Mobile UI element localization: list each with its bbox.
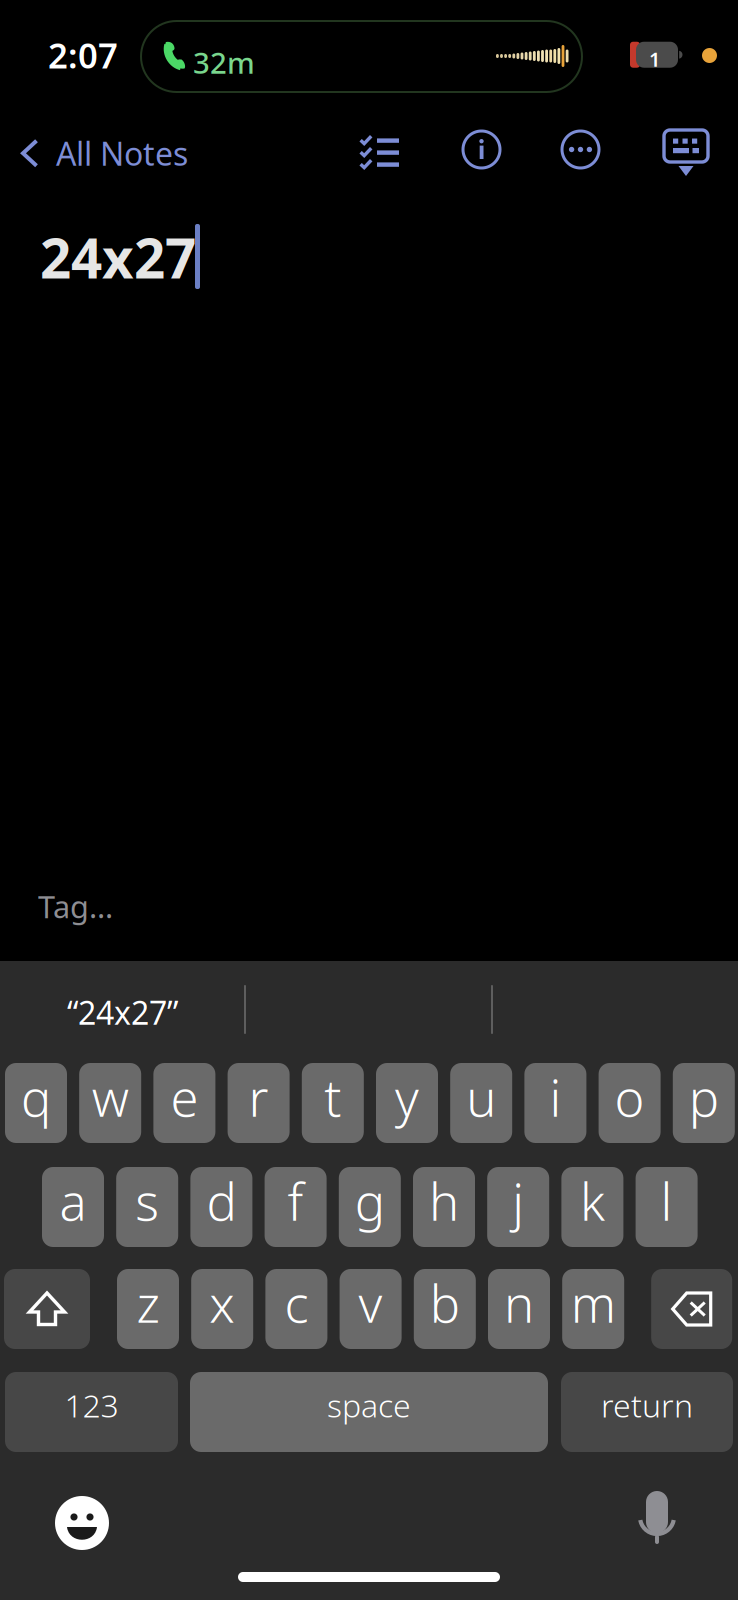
staticText: b: [430, 1269, 460, 1337]
staticText: y: [395, 1063, 419, 1131]
staticText: t: [324, 1063, 341, 1131]
button[interactable]: Emoji: [33, 1474, 131, 1572]
button[interactable]: All Notes: [4, 118, 204, 188]
button[interactable]: Info: [451, 119, 512, 180]
button[interactable]: e: [153, 1063, 215, 1143]
staticText: v: [359, 1269, 383, 1337]
button[interactable]: c: [265, 1269, 327, 1349]
button[interactable]: w: [79, 1063, 141, 1143]
button[interactable]: u: [450, 1063, 512, 1143]
staticText: x: [209, 1269, 235, 1337]
button[interactable]: i: [524, 1063, 586, 1143]
button[interactable]: return: [561, 1372, 733, 1452]
button[interactable]: t: [302, 1063, 364, 1143]
staticText: i: [549, 1063, 561, 1131]
staticText: 1: [649, 46, 660, 72]
button[interactable]: a: [42, 1167, 104, 1247]
staticText: 123: [64, 1384, 118, 1426]
staticText: e: [170, 1063, 198, 1131]
staticText: s: [135, 1167, 159, 1235]
button[interactable]: Tag...: [38, 886, 113, 927]
button[interactable]: y: [376, 1063, 438, 1143]
staticText: w: [92, 1063, 129, 1131]
button[interactable]: z: [117, 1269, 179, 1349]
staticText: 32m: [193, 43, 255, 82]
staticText: n: [504, 1269, 534, 1337]
staticText: d: [206, 1167, 236, 1235]
staticText: return: [601, 1384, 693, 1426]
button[interactable]: o: [599, 1063, 661, 1143]
button[interactable]: d: [190, 1167, 252, 1247]
staticText: j: [512, 1167, 524, 1235]
button[interactable]: x: [191, 1269, 253, 1349]
staticText: 2:07: [48, 32, 118, 78]
staticText: l: [661, 1167, 673, 1235]
staticText: z: [136, 1269, 159, 1337]
staticText: h: [429, 1167, 459, 1235]
button[interactable]: n: [488, 1269, 550, 1349]
button[interactable]: m: [562, 1269, 624, 1349]
button[interactable]: v: [340, 1269, 402, 1349]
staticText: “24x27”: [67, 991, 178, 1033]
staticText: c: [284, 1269, 308, 1337]
button[interactable]: 123: [5, 1372, 178, 1452]
staticText: a: [59, 1167, 86, 1235]
staticText: f: [288, 1167, 304, 1235]
button[interactable]: Delete: [651, 1269, 732, 1349]
staticText: q: [21, 1063, 51, 1131]
button[interactable]: g: [339, 1167, 401, 1247]
button[interactable]: Dictation: [612, 1468, 702, 1566]
staticText: m: [571, 1269, 616, 1337]
button[interactable]: h: [413, 1167, 475, 1247]
button[interactable]: k: [561, 1167, 623, 1247]
button[interactable]: b: [414, 1269, 476, 1349]
staticText: g: [355, 1167, 385, 1235]
staticText: r: [249, 1063, 269, 1131]
button[interactable]: s: [116, 1167, 178, 1247]
staticText: o: [615, 1063, 645, 1131]
button[interactable]: space: [190, 1372, 548, 1452]
button[interactable]: r: [228, 1063, 290, 1143]
button[interactable]: j: [487, 1167, 549, 1247]
staticText: 24x27: [40, 221, 196, 294]
staticText: Tag...: [38, 886, 113, 927]
button[interactable]: More: [550, 119, 611, 180]
staticText: u: [466, 1063, 496, 1131]
button[interactable]: p: [673, 1063, 735, 1143]
staticText: space: [327, 1384, 411, 1426]
button[interactable]: q: [5, 1063, 67, 1143]
button[interactable]: Hide Keyboard: [652, 118, 720, 190]
button[interactable]: l: [636, 1167, 698, 1247]
staticText: p: [689, 1063, 719, 1131]
button[interactable]: Checklist: [347, 121, 411, 179]
button[interactable]: f: [265, 1167, 327, 1247]
button[interactable]: Shift: [4, 1269, 90, 1349]
staticText: All Notes: [56, 132, 188, 174]
staticText: k: [580, 1167, 605, 1235]
